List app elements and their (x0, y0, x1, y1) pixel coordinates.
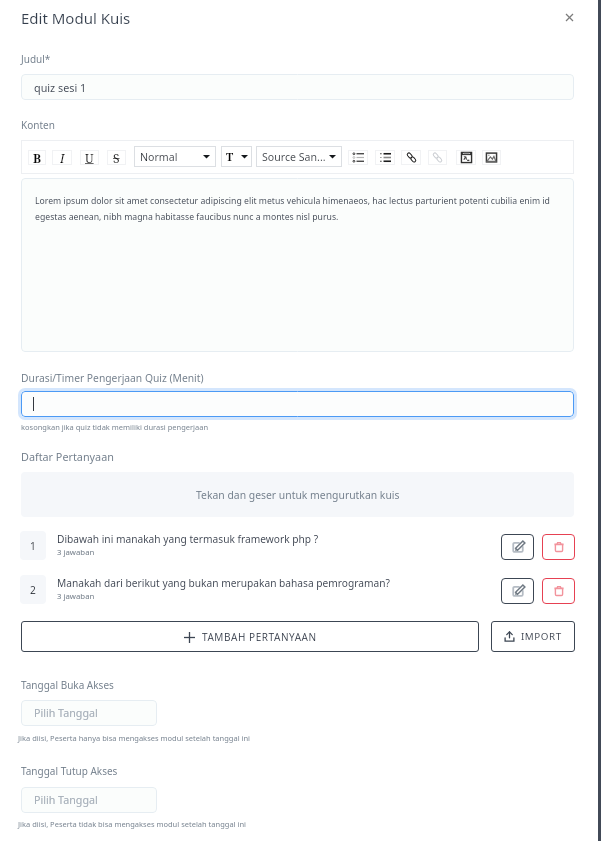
button[interactable]: Normal (134, 146, 216, 167)
button[interactable]: Format (482, 150, 501, 165)
staticText: Judul* (21, 52, 51, 66)
button[interactable]: B (28, 150, 46, 165)
staticText: Lorem ipsum dolor sit amet consectetur a… (35, 195, 562, 222)
staticText: I (60, 150, 65, 165)
button[interactable]: Pilih Tanggal (21, 700, 157, 726)
staticText: IMPORT (521, 630, 562, 643)
staticText: Pilih Tanggal (34, 706, 98, 721)
staticText: Pilih Tanggal (34, 793, 98, 808)
staticText: Dibawah ini manakah yang termasuk framew… (57, 532, 319, 546)
staticText: 3 jawaban (57, 547, 95, 558)
staticText: Daftar Pertanyaan (21, 449, 114, 464)
button[interactable]: Format (401, 150, 421, 165)
staticText: Tekan dan geser untuk mengurutkan kuis (196, 488, 400, 502)
staticText: Tanggal Buka Akses (21, 678, 114, 692)
button[interactable]: Format (456, 150, 476, 165)
button[interactable]: TAMBAH PERTANYAAN (21, 621, 479, 652)
button[interactable]: Edit (501, 534, 534, 560)
button[interactable]: IMPORT (491, 621, 575, 652)
staticText: U (85, 150, 94, 165)
staticText: 2 (30, 583, 36, 597)
staticText: 1 (30, 539, 36, 553)
staticText: Source San... (262, 150, 326, 164)
button[interactable]: Format (428, 150, 447, 165)
button[interactable]: I (52, 150, 72, 165)
button[interactable]: Source San... (256, 146, 342, 167)
button[interactable]: U (80, 150, 99, 165)
button[interactable]: Format (348, 150, 368, 165)
button[interactable]: Pilih Tanggal (21, 787, 157, 813)
staticText: quiz sesi 1 (34, 80, 87, 95)
staticText: TAMBAH PERTANYAAN (202, 630, 317, 644)
staticText: B (33, 150, 42, 165)
button[interactable]: Format (375, 150, 395, 165)
staticText: Jika diisi, Peserta hanya bisa mengakses… (18, 733, 251, 743)
button[interactable]: Edit (501, 578, 534, 604)
button[interactable] (21, 391, 574, 417)
staticText: Jika diisi, Peserta tidak bisa mengakses… (18, 819, 246, 829)
staticText: S (113, 150, 120, 165)
staticText: Durasi/Timer Pengerjaan Quiz (Menit) (21, 371, 204, 385)
button[interactable]: S (107, 150, 126, 165)
button[interactable]: Close (557, 5, 581, 29)
button[interactable]: Delete (542, 578, 575, 604)
staticText: Normal (140, 150, 178, 164)
staticText: kosongkan jika quiz tidak memiliki duras… (21, 422, 209, 432)
staticText: Manakah dari berikut yang bukan merupaka… (57, 576, 390, 590)
staticText: Konten (21, 118, 55, 132)
button[interactable]: Text color (221, 146, 252, 167)
staticText: Edit Modul Kuis (21, 8, 131, 28)
staticText: Tanggal Tutup Akses (21, 764, 118, 778)
button[interactable]: quiz sesi 1 (21, 74, 574, 100)
staticText: 3 jawaban (57, 591, 95, 602)
button[interactable]: Delete (542, 534, 575, 560)
staticText: T (226, 149, 234, 164)
